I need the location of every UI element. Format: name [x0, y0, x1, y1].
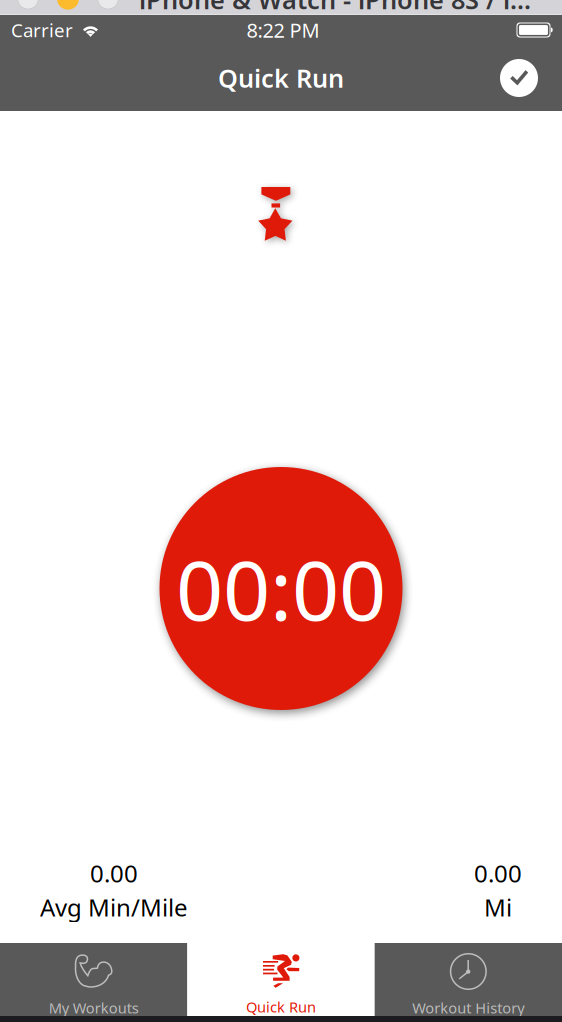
staticText: Avg Min/Mile	[40, 891, 188, 923]
staticText: 00:00	[176, 534, 386, 643]
staticText: Workout History	[412, 998, 524, 1017]
staticText: iPhone & Watch - iPhone 8S / i...	[139, 0, 531, 16]
staticText: Mi	[484, 891, 512, 923]
button[interactable]: Quick Run	[187, 943, 375, 1016]
staticText: Carrier	[11, 18, 73, 42]
staticText: 8:22 PM	[246, 17, 319, 43]
staticText: 0.00	[474, 857, 522, 889]
staticText: My Workouts	[49, 998, 139, 1017]
button[interactable]: 00:00	[159, 467, 402, 710]
staticText: 0.00	[90, 857, 138, 889]
button[interactable]: Workout History	[375, 943, 562, 1016]
staticText: Quick Run	[218, 61, 344, 95]
button[interactable]: My Workouts	[0, 943, 187, 1016]
staticText: Quick Run	[246, 997, 316, 1016]
button[interactable]: Finish workout	[500, 59, 538, 97]
